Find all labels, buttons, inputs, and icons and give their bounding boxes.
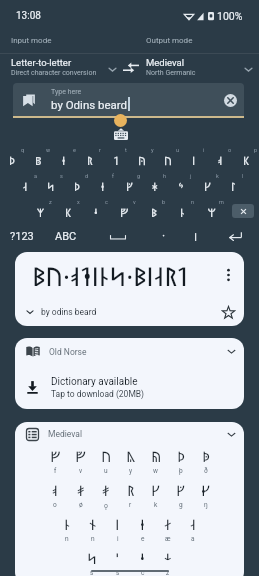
button[interactable]: Favourite: [216, 300, 240, 324]
button[interactable]: ᛍ: [130, 548, 155, 576]
button[interactable]: ᛋ: [79, 548, 105, 576]
button[interactable]: ᚯ: [68, 480, 93, 509]
button[interactable]: Dictionary available: [26, 365, 236, 409]
button[interactable]: ᚧ: [193, 446, 218, 475]
staticText: Output mode: [146, 36, 193, 45]
button[interactable]: Space: [88, 224, 148, 248]
staticText: ᛋ: [87, 548, 97, 568]
staticText: k: [154, 501, 158, 509]
button[interactable]: ᚮ: [42, 480, 68, 509]
button[interactable]: Clear text: [220, 90, 240, 110]
button[interactable]: k: [194, 172, 220, 198]
button[interactable]: ᚦ: [168, 446, 193, 475]
button[interactable]: n: [168, 198, 197, 224]
button[interactable]: p: [233, 146, 259, 172]
staticText: ᚯ: [77, 480, 85, 500]
button[interactable]: e: [51, 146, 77, 172]
staticText: ᛅ: [164, 514, 172, 534]
staticText: ᚮ: [218, 153, 223, 169]
staticText: i: [203, 147, 205, 153]
button[interactable]: ᚢ: [93, 446, 118, 475]
button[interactable]: v: [110, 198, 139, 224]
button[interactable]: j: [168, 172, 194, 198]
button[interactable]: g: [116, 172, 142, 198]
button[interactable]: l: [220, 172, 246, 198]
button[interactable]: ᚱ: [118, 480, 143, 509]
staticText: ᛕ: [65, 205, 71, 221]
button[interactable]: Expand input mode: [104, 57, 120, 79]
staticText: ᚶ: [201, 480, 210, 500]
button[interactable]: Medieval: [142, 57, 242, 77]
staticText: ᚴ: [151, 480, 160, 500]
staticText: g: [137, 173, 141, 179]
button[interactable]: Swap languages: [121, 57, 141, 79]
button[interactable]: ᚠ: [42, 446, 68, 475]
button[interactable]: t: [103, 146, 129, 172]
button[interactable]: ᛅ: [155, 514, 180, 543]
button[interactable]: x: [54, 198, 82, 224]
button[interactable]: a: [13, 172, 38, 198]
staticText: ᚴ: [204, 179, 211, 195]
staticText: ᛍ: [140, 548, 145, 568]
staticText: Medieval: [146, 57, 184, 68]
button[interactable]: Expand output mode: [240, 57, 257, 79]
button[interactable]: Dictionary: [19, 90, 39, 110]
staticText: p: [254, 147, 258, 153]
button[interactable]: More options: [216, 263, 240, 287]
staticText: ø: [79, 501, 83, 509]
staticText: d: [85, 173, 89, 179]
button[interactable]: w: [25, 146, 51, 172]
button[interactable]: ᛌ: [105, 548, 130, 576]
staticText: by Odins beard: [51, 98, 128, 111]
button[interactable]: ᚴ: [143, 480, 168, 509]
button[interactable]: y: [129, 146, 155, 172]
button[interactable]: ᚡ: [68, 446, 93, 475]
button[interactable]: ·: [148, 224, 180, 248]
button[interactable]: b: [139, 198, 168, 224]
button[interactable]: ᛂ: [130, 514, 155, 543]
button[interactable]: ᚶ: [193, 480, 218, 509]
button[interactable]: ᚾ: [80, 514, 105, 543]
button[interactable]: ᛁ: [180, 224, 212, 248]
button[interactable]: r: [77, 146, 103, 172]
button[interactable]: Old Norse: [26, 338, 236, 365]
staticText: ᛁ: [194, 229, 198, 244]
button[interactable]: ?123: [0, 224, 44, 248]
button[interactable]: Enter: [212, 224, 259, 248]
button[interactable]: u: [155, 146, 181, 172]
button[interactable]: ᚵ: [168, 480, 193, 509]
button[interactable]: ᚥ: [143, 446, 168, 475]
staticText: a: [34, 173, 37, 179]
staticText: c: [141, 569, 145, 576]
button[interactable]: z: [26, 198, 54, 224]
button[interactable]: c: [82, 198, 110, 224]
staticText: ᚠ: [50, 446, 60, 466]
staticText: x: [77, 199, 80, 205]
button[interactable]: Medieval: [26, 422, 236, 446]
staticText: Direct character conversion: [11, 69, 97, 77]
button[interactable]: ᛆ: [180, 514, 205, 543]
button[interactable]: Backspace: [232, 204, 254, 218]
button[interactable]: ᛎ: [155, 548, 180, 576]
button[interactable]: s: [38, 172, 64, 198]
button[interactable]: q: [0, 146, 25, 172]
button[interactable]: ᛁ: [105, 514, 130, 543]
staticText: þ: [179, 467, 183, 475]
button[interactable]: f: [90, 172, 116, 198]
button[interactable]: h: [142, 172, 168, 198]
button[interactable]: ᚿ: [54, 514, 80, 543]
button[interactable]: Letter-to-letter: [0, 57, 105, 77]
staticText: ᚽ: [101, 179, 105, 195]
button[interactable]: i: [181, 146, 207, 172]
staticText: w: [46, 147, 51, 153]
staticText: Old Norse: [49, 347, 227, 357]
staticText: ᛘ: [208, 205, 216, 221]
button[interactable]: ABC: [44, 224, 88, 248]
button[interactable]: m: [197, 198, 226, 224]
button[interactable]: ᚯ: [93, 480, 118, 510]
button[interactable]: ᚣ: [118, 446, 143, 475]
button[interactable]: o: [207, 146, 233, 172]
button[interactable]: d: [64, 172, 90, 198]
staticText: ᚦ: [9, 153, 16, 169]
staticText: n: [65, 535, 69, 543]
